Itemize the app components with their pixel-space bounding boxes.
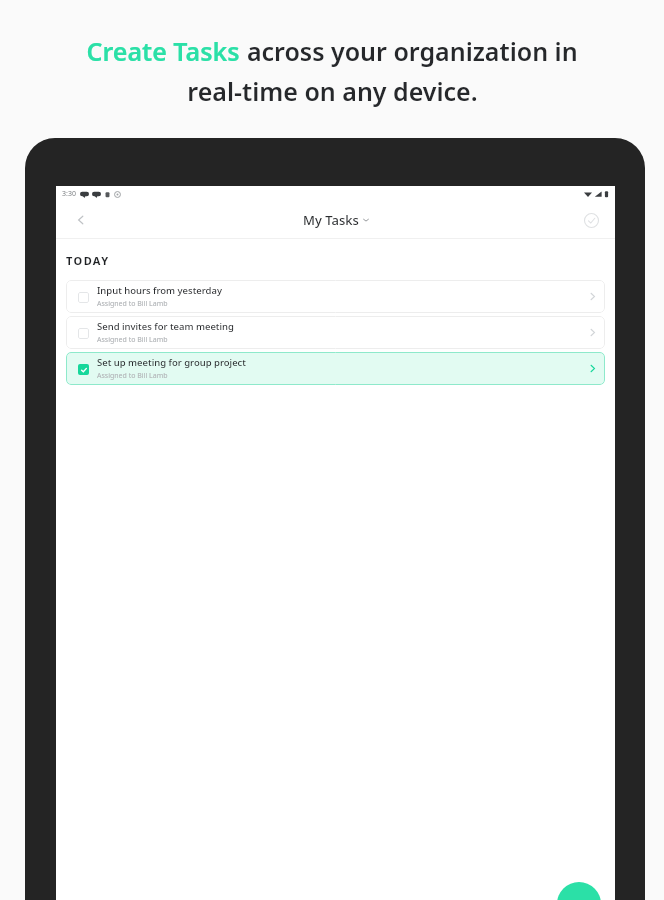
staticText: Assigned to Bill Lamb: [97, 335, 168, 345]
button[interactable]: Mark incomplete: [74, 360, 92, 378]
staticText: across your organization in: [240, 34, 578, 68]
staticText: Assigned to Bill Lamb: [97, 371, 168, 381]
staticText: Send invites for team meeting: [97, 320, 234, 333]
button[interactable]: Mark incomplete: [66, 352, 605, 385]
button[interactable]: Mark complete: [74, 324, 92, 342]
button[interactable]: My Tasks: [303, 211, 369, 229]
staticText: TODAY: [66, 253, 110, 268]
staticText: Set up meeting for group project: [97, 356, 246, 369]
staticText: My Tasks: [303, 211, 359, 229]
button[interactable]: Complete all: [579, 208, 603, 232]
button[interactable]: Add task: [557, 882, 601, 900]
staticText: 3:30: [62, 189, 76, 199]
staticText: real-time on any device.: [187, 74, 478, 108]
staticText: Create Tasks: [86, 34, 240, 68]
button[interactable]: Back: [70, 209, 92, 231]
button[interactable]: Mark complete: [66, 280, 605, 313]
button[interactable]: Mark complete: [66, 316, 605, 349]
staticText: Assigned to Bill Lamb: [97, 299, 168, 309]
staticText: Input hours from yesterday: [97, 284, 222, 297]
button[interactable]: Mark complete: [74, 288, 92, 306]
